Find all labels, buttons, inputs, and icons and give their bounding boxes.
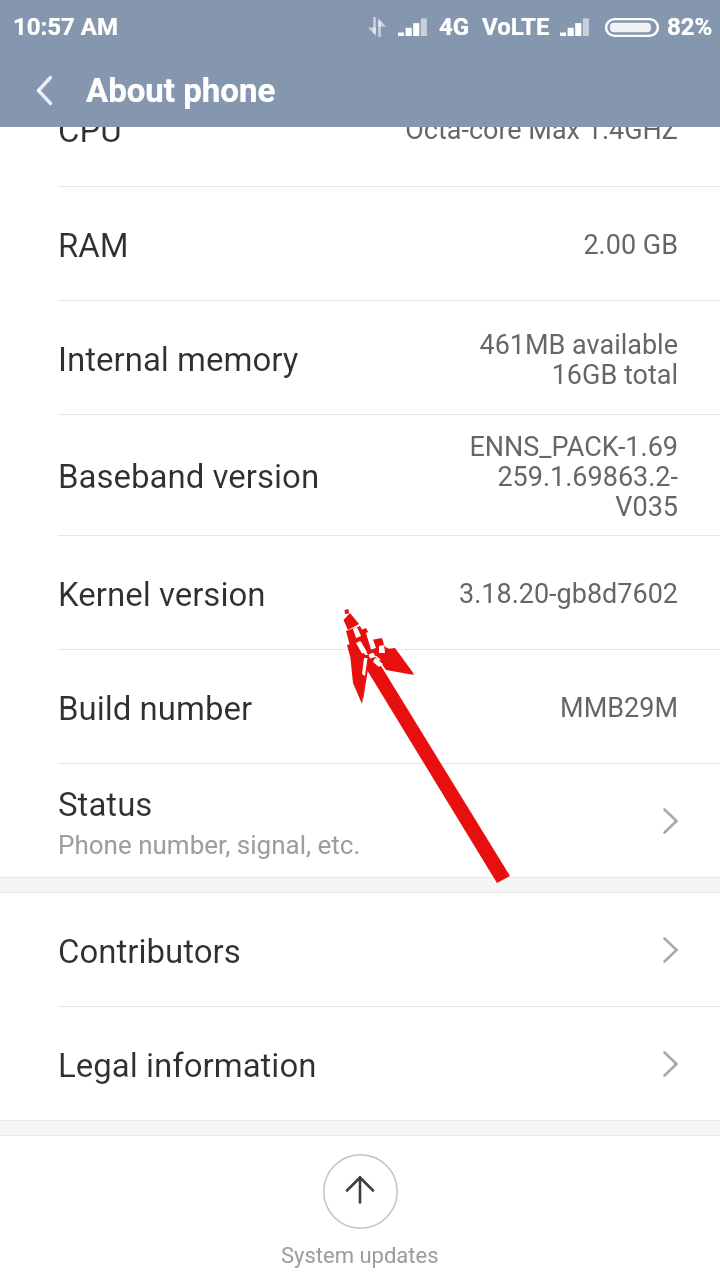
staticText: VoLTE	[482, 13, 550, 41]
staticText: 10:57 AM	[13, 13, 118, 41]
staticText: Octa-core Max 1.4GHZ	[134, 127, 678, 146]
staticText: 82%	[667, 13, 713, 41]
button[interactable]: Legal information	[0, 1007, 720, 1120]
staticText: Legal information	[58, 1046, 317, 1085]
staticText: CPU	[58, 127, 122, 150]
staticText: 461MB available 16GB total	[311, 329, 678, 390]
staticText: About phone	[86, 71, 276, 110]
button[interactable]: CPU	[0, 127, 720, 185]
button[interactable]: Kernel version	[0, 536, 720, 649]
staticText: Kernel version	[58, 575, 266, 614]
staticText: Contributors	[58, 932, 241, 971]
staticText: Build number	[58, 689, 253, 728]
button[interactable]: System updates	[0, 1136, 720, 1280]
button[interactable]: Build number	[0, 650, 720, 763]
staticText: Internal memory	[58, 340, 299, 379]
staticText: 4G	[439, 13, 470, 41]
button[interactable]: Back	[0, 53, 88, 127]
button[interactable]: Contributors	[0, 893, 720, 1006]
staticText: System updates	[281, 1243, 439, 1269]
staticText: ENNS_PACK-1.69 259.1.69863.2- V035	[332, 431, 678, 522]
staticText: RAM	[58, 226, 129, 265]
staticText: Phone number, signal, etc.	[58, 830, 361, 860]
staticText: Baseband version	[58, 457, 320, 496]
button[interactable]: Status	[0, 764, 720, 877]
staticText: MMB29M	[265, 692, 678, 724]
staticText: Status	[58, 785, 153, 824]
staticText: 3.18.20-gb8d7602	[278, 578, 678, 610]
button[interactable]: RAM	[0, 187, 720, 300]
button[interactable]: Internal memory	[0, 301, 720, 414]
button[interactable]: Baseband version	[0, 415, 720, 535]
staticText: 2.00 GB	[141, 229, 678, 261]
